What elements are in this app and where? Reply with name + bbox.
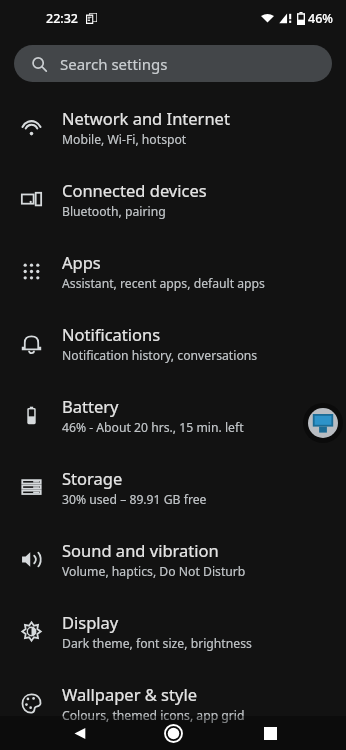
staticText: Battery: [62, 395, 119, 417]
staticText: Sound and vibration: [62, 539, 219, 561]
staticText: Display: [62, 611, 119, 633]
staticText: 22:32: [46, 10, 79, 27]
button[interactable]: Connected devices: [0, 163, 346, 235]
staticText: Wallpaper & style: [62, 683, 197, 705]
button[interactable]: Network and Internet: [0, 91, 346, 163]
staticText: 30% used – 89.91 GB free: [62, 491, 207, 508]
staticText: Notifications: [62, 323, 161, 345]
button[interactable]: Back: [62, 716, 98, 750]
staticText: Colours, themed icons, app grid: [62, 707, 245, 724]
button[interactable]: Apps: [0, 235, 346, 307]
staticText: Connected devices: [62, 179, 207, 201]
button[interactable]: Battery: [0, 379, 346, 451]
staticText: Network and Internet: [62, 107, 230, 129]
button[interactable]: Storage: [0, 451, 346, 523]
staticText: Storage: [62, 467, 123, 489]
staticText: Apps: [62, 251, 101, 273]
staticText: 46% - About 20 hrs., 15 min. left: [62, 419, 244, 436]
button[interactable]: Screen share bubble: [303, 403, 343, 443]
button[interactable]: Home: [155, 716, 191, 750]
button[interactable]: Display: [0, 595, 346, 667]
button[interactable]: Recent apps: [252, 716, 288, 750]
button[interactable]: Sound and vibration: [0, 523, 346, 595]
staticText: Volume, haptics, Do Not Disturb: [62, 563, 246, 580]
button[interactable]: Notifications: [0, 307, 346, 379]
staticText: Mobile, Wi-Fi, hotspot: [62, 131, 187, 148]
staticText: Notification history, conversations: [62, 347, 258, 364]
staticText: Search settings: [60, 54, 168, 74]
button[interactable]: Search settings: [14, 45, 332, 82]
button[interactable]: Wallpaper & style: [0, 667, 346, 739]
staticText: Dark theme, font size, brightness: [62, 635, 252, 652]
staticText: 46%: [308, 10, 333, 27]
staticText: Assistant, recent apps, default apps: [62, 275, 265, 292]
staticText: Bluetooth, pairing: [62, 203, 166, 220]
